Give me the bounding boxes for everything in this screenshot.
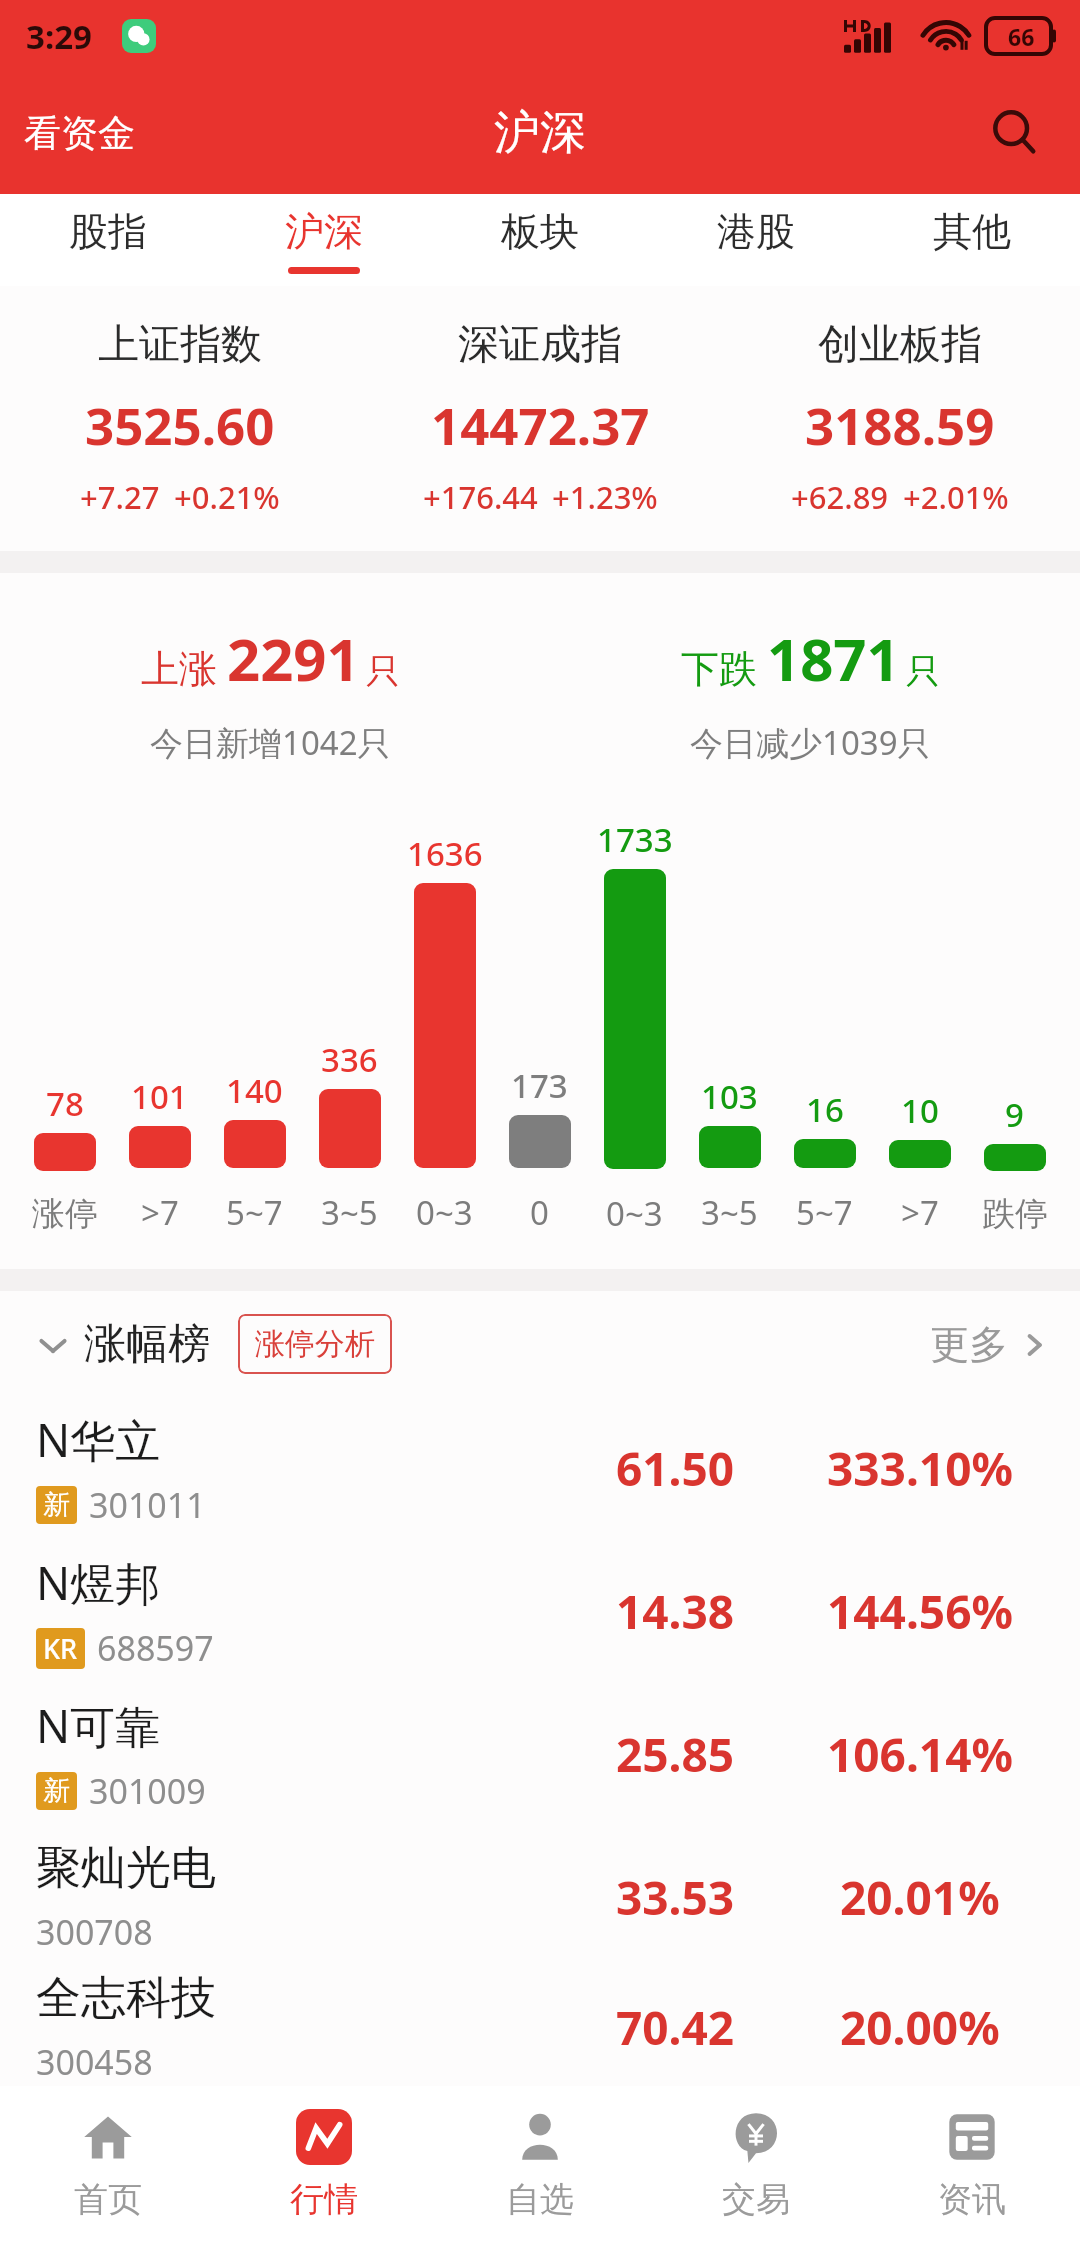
button[interactable]: 上证指数	[0, 286, 360, 551]
staticText: 3~5	[321, 1190, 378, 1235]
staticText: 1636	[407, 831, 483, 876]
button[interactable]: N煜邦	[0, 1540, 1080, 1683]
staticText: 2291	[227, 619, 360, 698]
staticText: 14472.37	[431, 390, 650, 459]
staticText: 涨停	[32, 1193, 98, 1235]
staticText: 301011	[89, 1482, 206, 1528]
button[interactable]: 涨幅榜	[36, 1318, 210, 1371]
staticText: 行情	[290, 2178, 358, 2221]
staticText: 14.38	[616, 1580, 735, 1643]
staticText: 66	[1008, 21, 1035, 52]
staticText: 10	[901, 1088, 939, 1133]
button[interactable]: 板块	[432, 194, 648, 286]
staticText: 20.01%	[840, 1866, 1000, 1929]
staticText: 跌停	[982, 1193, 1048, 1235]
button[interactable]: 看资金	[0, 90, 159, 177]
staticText: N煜邦	[36, 1552, 161, 1613]
staticText: >7	[901, 1190, 939, 1235]
button[interactable]: 103	[682, 1074, 777, 1235]
button[interactable]: 78	[18, 1081, 112, 1235]
staticText: 144.56%	[827, 1580, 1013, 1643]
staticText: 101	[131, 1074, 188, 1119]
staticText: N华立	[36, 1409, 161, 1470]
button[interactable]: 资讯	[864, 2086, 1080, 2248]
button[interactable]: 336	[302, 1037, 397, 1235]
button[interactable]: 全志科技	[0, 1969, 1080, 2086]
staticText: KR	[43, 1630, 78, 1667]
button[interactable]: 聚灿光电	[0, 1826, 1080, 1969]
staticText: +2.01%	[903, 476, 1009, 518]
staticText: 看资金	[24, 110, 135, 157]
staticText: +176.44	[423, 476, 538, 518]
staticText: 3~5	[701, 1190, 758, 1235]
button[interactable]: 沪深	[216, 194, 432, 286]
button[interactable]: 173	[492, 1063, 587, 1235]
staticText: 只	[906, 650, 940, 693]
button[interactable]: 股指	[0, 194, 216, 286]
staticText: +0.21%	[174, 476, 280, 518]
staticText: 20.00%	[840, 1996, 1000, 2059]
button[interactable]: 16	[777, 1087, 872, 1235]
staticText: 5~7	[796, 1190, 853, 1235]
staticText: 25.85	[616, 1723, 735, 1786]
button[interactable]: 涨停分析	[238, 1314, 392, 1374]
staticText: 全志科技	[36, 1970, 216, 2027]
button[interactable]: 上涨	[0, 619, 540, 765]
button[interactable]: 自选	[432, 2086, 648, 2248]
button[interactable]: 下跌	[540, 619, 1080, 765]
button[interactable]: 10	[872, 1088, 967, 1235]
staticText: 300458	[36, 2039, 153, 2085]
button[interactable]: Search	[972, 90, 1058, 176]
staticText: 1733	[597, 817, 673, 862]
staticText: 78	[46, 1081, 84, 1126]
staticText: 61.50	[616, 1437, 735, 1500]
staticText: 16	[806, 1087, 844, 1132]
button[interactable]: 1733	[587, 817, 682, 1235]
button[interactable]: 更多	[930, 1320, 1080, 1369]
staticText: 5~7	[226, 1190, 283, 1235]
staticText: 今日减少1039只	[690, 720, 931, 765]
staticText: 交易	[722, 2178, 790, 2221]
button[interactable]: 创业板指	[720, 286, 1080, 551]
staticText: 资讯	[938, 2178, 1006, 2221]
staticText: +1.23%	[552, 476, 658, 518]
button[interactable]: 交易	[648, 2086, 864, 2248]
button[interactable]: 101	[112, 1074, 207, 1235]
button[interactable]: 深证成指	[360, 286, 720, 551]
staticText: 0	[530, 1190, 549, 1235]
staticText: 涨停分析	[255, 1325, 375, 1363]
button[interactable]: 其他	[864, 194, 1080, 286]
staticText: 新	[43, 1488, 70, 1522]
button[interactable]: N可靠	[0, 1683, 1080, 1826]
button[interactable]: 首页	[0, 2086, 216, 2248]
staticText: >7	[141, 1190, 179, 1235]
staticText: 创业板指	[818, 319, 982, 371]
staticText: 0~3	[416, 1190, 473, 1235]
button[interactable]: 140	[207, 1068, 302, 1235]
staticText: 港股	[717, 207, 795, 256]
staticText: 333.10%	[827, 1437, 1013, 1500]
staticText: 聚灿光电	[36, 1840, 216, 1897]
staticText: 深证成指	[458, 319, 622, 371]
staticText: 70.42	[616, 1996, 735, 2059]
button[interactable]: 9	[967, 1092, 1062, 1235]
staticText: 336	[321, 1037, 378, 1082]
staticText: 103	[701, 1074, 758, 1119]
button[interactable]: 行情	[216, 2086, 432, 2248]
button[interactable]: N华立	[0, 1397, 1080, 1540]
staticText: 其他	[933, 207, 1011, 256]
staticText: 3:29	[26, 14, 92, 59]
button[interactable]: 港股	[648, 194, 864, 286]
staticText: 140	[226, 1068, 283, 1113]
staticText: 688597	[97, 1625, 214, 1671]
button[interactable]: 1636	[397, 831, 492, 1235]
staticText: 更多	[930, 1320, 1008, 1369]
staticText: 301009	[89, 1768, 206, 1814]
staticText: 上涨	[141, 645, 217, 693]
staticText: 板块	[501, 207, 579, 256]
staticText: +62.89	[791, 476, 889, 518]
staticText: 0~3	[606, 1191, 663, 1235]
staticText: 涨幅榜	[84, 1318, 210, 1371]
staticText: 下跌	[681, 645, 757, 693]
staticText: +7.27	[80, 476, 160, 518]
